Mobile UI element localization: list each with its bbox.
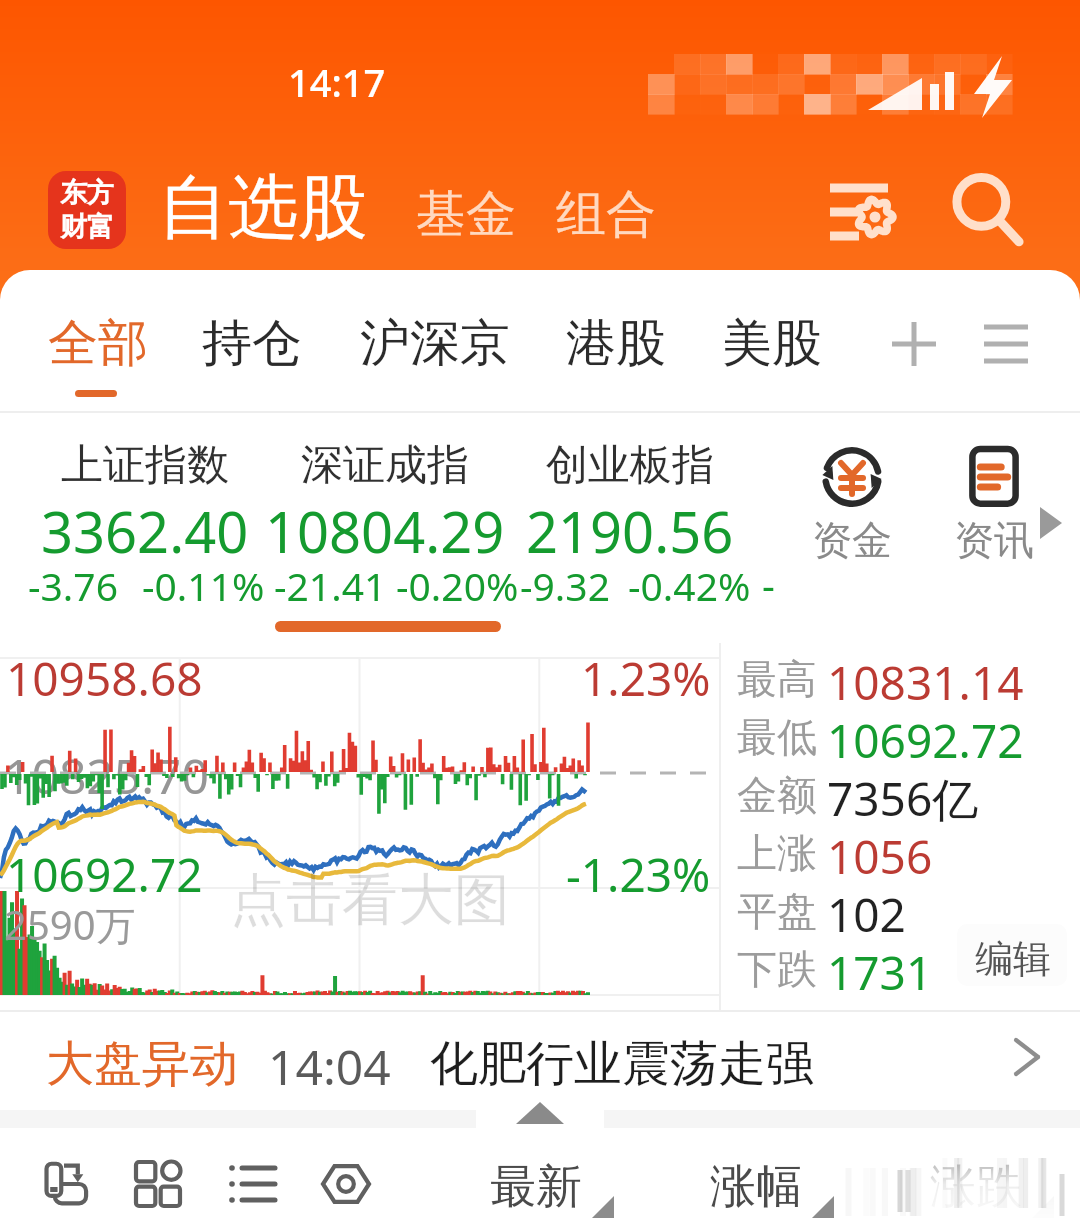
staticText: -3.76	[28, 559, 118, 612]
button[interactable]: Grid view	[124, 1150, 192, 1218]
staticText: 14:04	[268, 1034, 391, 1099]
staticText: 10804.29	[265, 493, 505, 569]
staticText: 沪深京	[360, 312, 510, 375]
button[interactable]: 港股	[560, 306, 672, 381]
button[interactable]: 上证指数	[16, 413, 274, 621]
button[interactable]: Menu	[966, 304, 1046, 384]
staticText: 2190.56	[526, 493, 734, 569]
button[interactable]: 10825.70	[0, 643, 719, 1010]
staticText: 上证指数	[61, 439, 229, 492]
staticText: 涨跌	[930, 1158, 1022, 1216]
button[interactable]: 持仓	[196, 306, 308, 381]
staticText: 财富	[60, 210, 114, 244]
staticText: 下跌	[737, 944, 817, 994]
staticText: -	[762, 557, 775, 611]
staticText: 全部	[48, 312, 148, 375]
staticText: -0.42%	[628, 559, 751, 612]
staticText: 点击看大图	[230, 865, 510, 936]
staticText: 最低	[737, 712, 817, 762]
staticText: 102	[827, 883, 906, 939]
staticText: 最高	[737, 654, 817, 704]
button[interactable]: Add	[874, 304, 954, 384]
staticText: 上涨	[737, 828, 817, 878]
button[interactable]: 创业板指	[508, 413, 752, 621]
button[interactable]: List view	[218, 1150, 286, 1218]
staticText: 1056	[827, 825, 933, 881]
button[interactable]: 资讯	[932, 441, 1056, 565]
staticText: 编辑	[975, 935, 1051, 983]
staticText: 10692.72	[6, 843, 203, 906]
staticText: 7356亿	[827, 767, 979, 823]
staticText: 1.23%	[581, 647, 711, 710]
staticText: 1731	[827, 941, 933, 997]
staticText: 美股	[722, 312, 822, 375]
button[interactable]: 最新	[490, 1148, 640, 1220]
button[interactable]: 资金	[790, 441, 914, 565]
button[interactable]: Collapse	[476, 1090, 604, 1128]
staticText: 涨幅	[710, 1158, 802, 1216]
staticText: 化肥行业震荡走强	[430, 1034, 814, 1094]
button[interactable]: 深证成指	[258, 413, 512, 621]
button[interactable]: Search	[938, 160, 1038, 260]
staticText: -1.23%	[566, 843, 711, 906]
button[interactable]: 涨幅	[710, 1148, 860, 1220]
staticText: 10825.70	[4, 743, 210, 808]
button[interactable]: 组合	[556, 183, 656, 246]
staticText: 10692.72	[827, 709, 1024, 765]
staticText: 深证成指	[301, 439, 469, 492]
staticText: 10958.68	[6, 647, 203, 710]
button[interactable]: 美股	[716, 306, 828, 381]
staticText: 金额	[737, 770, 817, 820]
button[interactable]: 沪深京	[354, 306, 516, 381]
staticText: -21.41	[274, 559, 387, 612]
button[interactable]: 自选股	[158, 164, 368, 252]
staticText: 创业板指	[546, 439, 714, 492]
button[interactable]: 基金	[416, 183, 516, 246]
button[interactable]	[0, 1010, 1080, 1100]
staticText: 大盘异动	[46, 1034, 238, 1094]
staticText: 平盘	[737, 886, 817, 936]
button[interactable]: 涨跌	[930, 1148, 1080, 1220]
staticText: 东方	[60, 176, 114, 210]
staticText: -0.20%	[396, 559, 519, 612]
button[interactable]: Transfer	[30, 1150, 98, 1218]
staticText: 3362.40	[41, 493, 249, 569]
staticText: -9.32	[520, 559, 610, 612]
staticText: 持仓	[202, 312, 302, 375]
staticText: 10831.14	[827, 651, 1024, 707]
button[interactable]: Sort settings	[812, 160, 908, 256]
staticText: 资讯	[954, 515, 1034, 565]
staticText: 资金	[812, 515, 892, 565]
staticText: -0.11%	[142, 559, 265, 612]
staticText: 2590万	[4, 897, 136, 952]
staticText: 14:17	[288, 56, 386, 108]
staticText: 最新	[490, 1158, 582, 1216]
button[interactable]: 东方	[48, 171, 126, 249]
staticText: 港股	[566, 312, 666, 375]
button[interactable]: Settings	[312, 1150, 380, 1218]
button[interactable]: 全部	[42, 306, 154, 381]
